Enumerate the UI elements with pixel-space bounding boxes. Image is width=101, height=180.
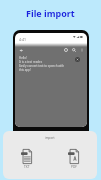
- button[interactable]: TXT: [21, 149, 32, 169]
- button[interactable]: Search: [72, 48, 76, 52]
- staticText: this app!: [19, 68, 31, 72]
- staticText: import: [45, 136, 55, 140]
- button[interactable]: Refresh: [64, 48, 68, 52]
- button[interactable]: PDF: [68, 149, 79, 169]
- button[interactable]: Close: [75, 57, 80, 62]
- staticText: It is a test reader.: [19, 60, 43, 64]
- staticText: File import: [26, 7, 75, 19]
- staticText: TXT: [24, 165, 30, 169]
- staticText: Hello!: [19, 56, 27, 60]
- button[interactable]: More options: [80, 48, 84, 52]
- staticText: PDF: [71, 165, 77, 169]
- staticText: 4:41: [19, 37, 26, 42]
- staticText: Easily convert text to speech with: [19, 64, 65, 68]
- button[interactable]: Back: [20, 49, 23, 52]
